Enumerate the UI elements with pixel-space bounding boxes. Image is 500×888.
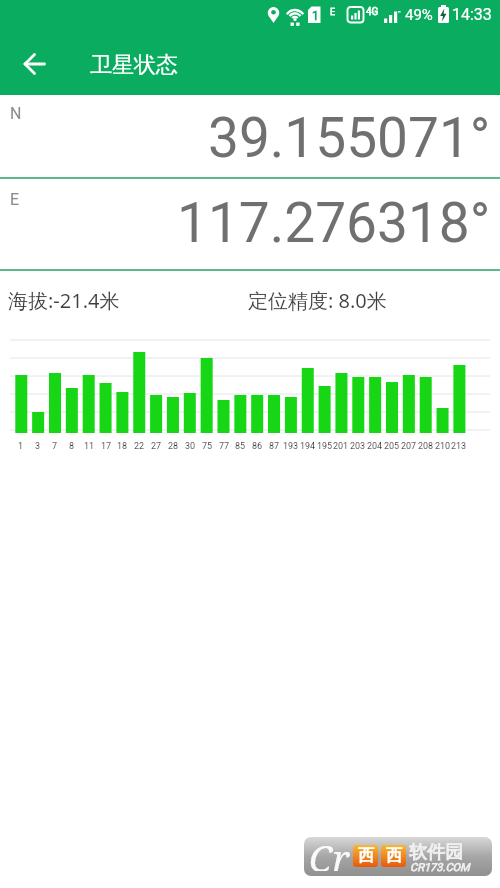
staticText: 75 bbox=[202, 441, 213, 452]
staticText: 8 bbox=[69, 441, 75, 452]
staticText: 86 bbox=[252, 441, 263, 452]
staticText: 201 bbox=[333, 441, 349, 452]
staticText: 205 bbox=[384, 441, 400, 452]
staticText: 3 bbox=[35, 441, 41, 452]
staticText: 定位精度: 8.0米 bbox=[248, 287, 387, 314]
staticText: 西 bbox=[358, 846, 374, 866]
staticText: 117.276318° bbox=[177, 191, 491, 255]
staticText: 210 bbox=[435, 441, 451, 452]
staticText: 77 bbox=[219, 441, 230, 452]
staticText: 14:33 bbox=[452, 5, 492, 24]
staticText: 27 bbox=[151, 441, 162, 452]
staticText: 204 bbox=[367, 441, 383, 452]
staticText: CR173.COM bbox=[410, 861, 470, 874]
staticText: 49% bbox=[405, 6, 433, 24]
staticText: 7 bbox=[52, 441, 58, 452]
staticText: N bbox=[10, 104, 22, 123]
staticText: 203 bbox=[350, 441, 366, 452]
staticText: 208 bbox=[418, 441, 434, 452]
staticText: 22 bbox=[134, 441, 145, 452]
staticText: 39.155071° bbox=[208, 106, 491, 170]
staticText: 4G bbox=[366, 6, 379, 18]
staticText: 30 bbox=[185, 441, 196, 452]
staticText: 87 bbox=[269, 441, 280, 452]
staticText: 17 bbox=[101, 441, 112, 452]
staticText: 卫星状态 bbox=[90, 51, 178, 79]
staticText: E bbox=[330, 7, 336, 18]
staticText: 18 bbox=[117, 441, 128, 452]
staticText: 195 bbox=[317, 441, 333, 452]
staticText: 西 bbox=[386, 846, 402, 866]
staticText: E bbox=[10, 190, 20, 209]
staticText: 213 bbox=[451, 441, 467, 452]
staticText: 海拔:-21.4米 bbox=[8, 287, 120, 314]
staticText: 85 bbox=[235, 441, 246, 452]
staticText: 11 bbox=[84, 441, 95, 452]
staticText: 193 bbox=[283, 441, 299, 452]
staticText: 软件园 bbox=[409, 841, 463, 864]
staticText: 1 bbox=[18, 441, 24, 452]
staticText: 28 bbox=[168, 441, 179, 452]
staticText: 1 bbox=[312, 9, 319, 23]
staticText: 194 bbox=[300, 441, 316, 452]
staticText: 207 bbox=[401, 441, 417, 452]
staticText: Cr bbox=[309, 837, 350, 871]
